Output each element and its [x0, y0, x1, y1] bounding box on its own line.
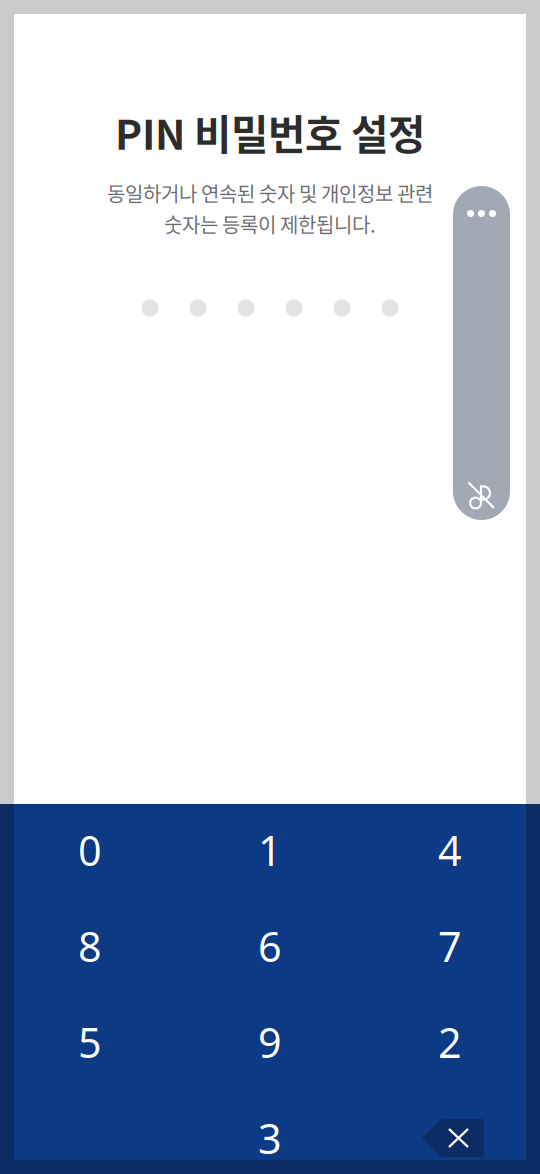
button[interactable]: 9	[180, 994, 360, 1090]
button[interactable]: 3	[180, 1090, 360, 1174]
staticText: 2	[438, 1014, 462, 1070]
staticText: 9	[258, 1014, 282, 1070]
staticText: 5	[78, 1014, 102, 1070]
staticText: 0	[78, 822, 102, 878]
button[interactable]: 5	[0, 994, 180, 1090]
button[interactable]: 2	[360, 994, 540, 1090]
button[interactable]: 1	[180, 802, 360, 898]
button[interactable]: 0	[0, 802, 180, 898]
button[interactable]: Delete	[363, 1090, 540, 1174]
staticText: 3	[258, 1110, 282, 1166]
staticText: 1	[258, 822, 282, 878]
staticText: PIN 비밀번호 설정	[115, 103, 425, 161]
staticText: 7	[438, 918, 462, 974]
staticText: 숫자는 등록이 제한됩니다.	[164, 209, 376, 238]
staticText: 8	[78, 918, 102, 974]
button[interactable]: 6	[180, 898, 360, 994]
staticText: 6	[258, 918, 282, 974]
button[interactable]: Accessibility shortcuts	[453, 186, 510, 520]
staticText: 4	[438, 822, 462, 878]
staticText: 동일하거나 연속된 숫자 및 개인정보 관련	[107, 178, 433, 207]
button[interactable]: 8	[0, 898, 180, 994]
button[interactable]: 4	[360, 802, 540, 898]
button[interactable]: 7	[360, 898, 540, 994]
